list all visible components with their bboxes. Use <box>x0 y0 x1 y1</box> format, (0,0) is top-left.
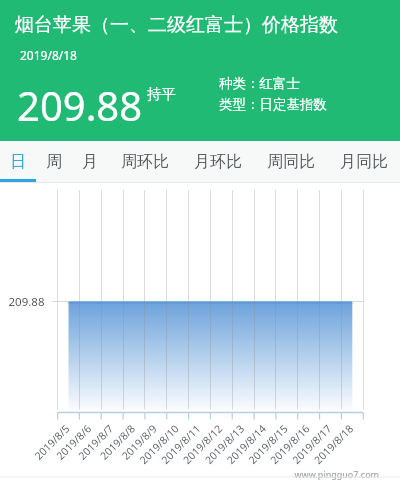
staticText: 持平 <box>147 85 176 103</box>
staticText: 月 <box>82 152 98 172</box>
staticText: 周环比 <box>121 152 169 172</box>
staticText: 烟台苹果（一、二级红富士）价格指数 <box>15 13 338 37</box>
button[interactable]: 周同比 <box>254 141 327 182</box>
staticText: 209.88 <box>17 78 143 132</box>
staticText: 日 <box>10 152 26 172</box>
button[interactable]: 月 <box>72 141 108 182</box>
staticText: 周 <box>46 152 62 172</box>
button[interactable]: 月同比 <box>327 141 400 182</box>
staticText: 2019/8/18 <box>20 47 77 63</box>
staticText: 周同比 <box>267 152 315 172</box>
staticText: 月环比 <box>194 152 242 172</box>
button[interactable]: 周 <box>36 141 72 182</box>
staticText: 月同比 <box>340 152 388 172</box>
staticText: 类型：日定基指数 <box>219 96 327 113</box>
button[interactable]: 日 <box>0 141 36 182</box>
button[interactable]: 月环比 <box>181 141 254 182</box>
staticText: 种类：红富士 <box>219 75 300 92</box>
button[interactable]: 周环比 <box>108 141 181 182</box>
